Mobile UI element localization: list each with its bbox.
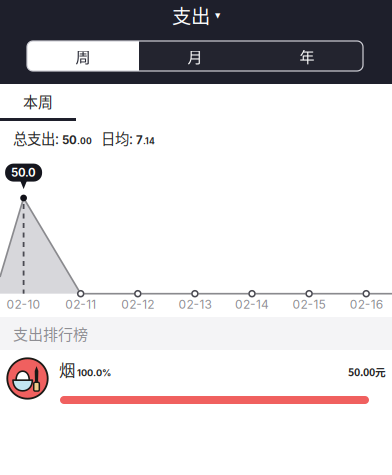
staticText: 02-12 [121, 297, 154, 311]
staticText: 本周 [23, 90, 53, 112]
staticText: 7 [133, 133, 143, 147]
staticText: 总支出: [13, 128, 59, 148]
staticText: 02-11 [65, 297, 96, 311]
staticText: .14 [143, 136, 155, 146]
button[interactable]: 本周 [0, 84, 76, 121]
staticText: 100.0% [75, 367, 111, 378]
staticText: 02-10 [7, 297, 41, 311]
staticText: 周 [75, 45, 90, 67]
staticText: 支出 [172, 1, 210, 29]
staticText: 02-14 [235, 297, 269, 311]
staticText: 50.0 [11, 166, 36, 179]
staticText: ▾ [215, 9, 220, 21]
button[interactable]: 年 [251, 41, 363, 71]
staticText: 50.00元 [348, 364, 386, 379]
button[interactable]: 烟 [0, 350, 392, 410]
staticText: 02-13 [178, 297, 211, 311]
staticText: .00 [77, 136, 92, 146]
button[interactable]: 周 [27, 41, 139, 71]
staticText: 月 [187, 45, 202, 67]
staticText: 烟 [59, 357, 75, 381]
staticText: 支出排行榜 [13, 323, 88, 344]
staticText: 02-15 [293, 297, 326, 311]
staticText: 50 [59, 133, 77, 147]
staticText: 年 [299, 45, 314, 67]
button[interactable]: 支出 [0, 0, 392, 30]
staticText: 日均: [92, 128, 133, 148]
staticText: 02-16 [350, 297, 383, 311]
button[interactable]: 月 [139, 41, 251, 71]
